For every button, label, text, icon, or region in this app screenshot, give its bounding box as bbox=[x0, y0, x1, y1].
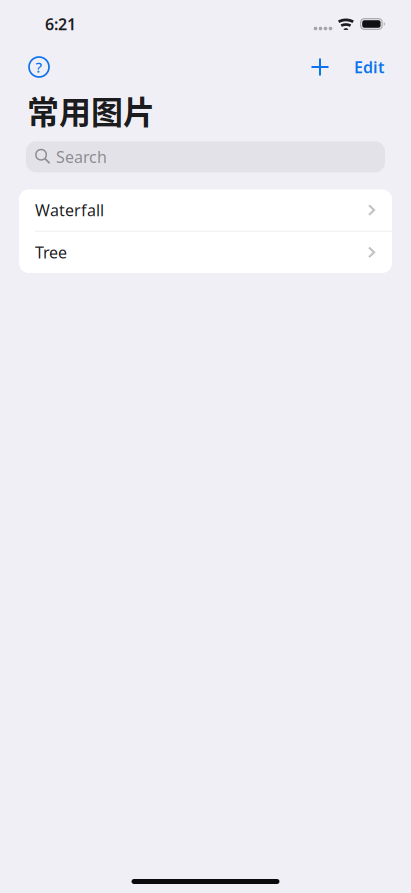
staticText: 6:21 bbox=[45, 13, 76, 35]
staticText: ? bbox=[35, 57, 42, 77]
staticText: 常用图片 bbox=[27, 87, 155, 133]
button[interactable]: Add bbox=[305, 52, 335, 82]
staticText: Edit bbox=[354, 56, 384, 78]
staticText: Tree bbox=[35, 242, 67, 263]
button[interactable]: Help bbox=[24, 52, 54, 82]
staticText: Waterfall bbox=[35, 199, 104, 221]
button[interactable]: Tree bbox=[19, 231, 392, 273]
button[interactable]: Waterfall bbox=[19, 189, 392, 231]
button[interactable]: Search bbox=[0, 141, 411, 172]
staticText: Search bbox=[56, 146, 107, 167]
button[interactable]: Edit bbox=[335, 52, 384, 82]
